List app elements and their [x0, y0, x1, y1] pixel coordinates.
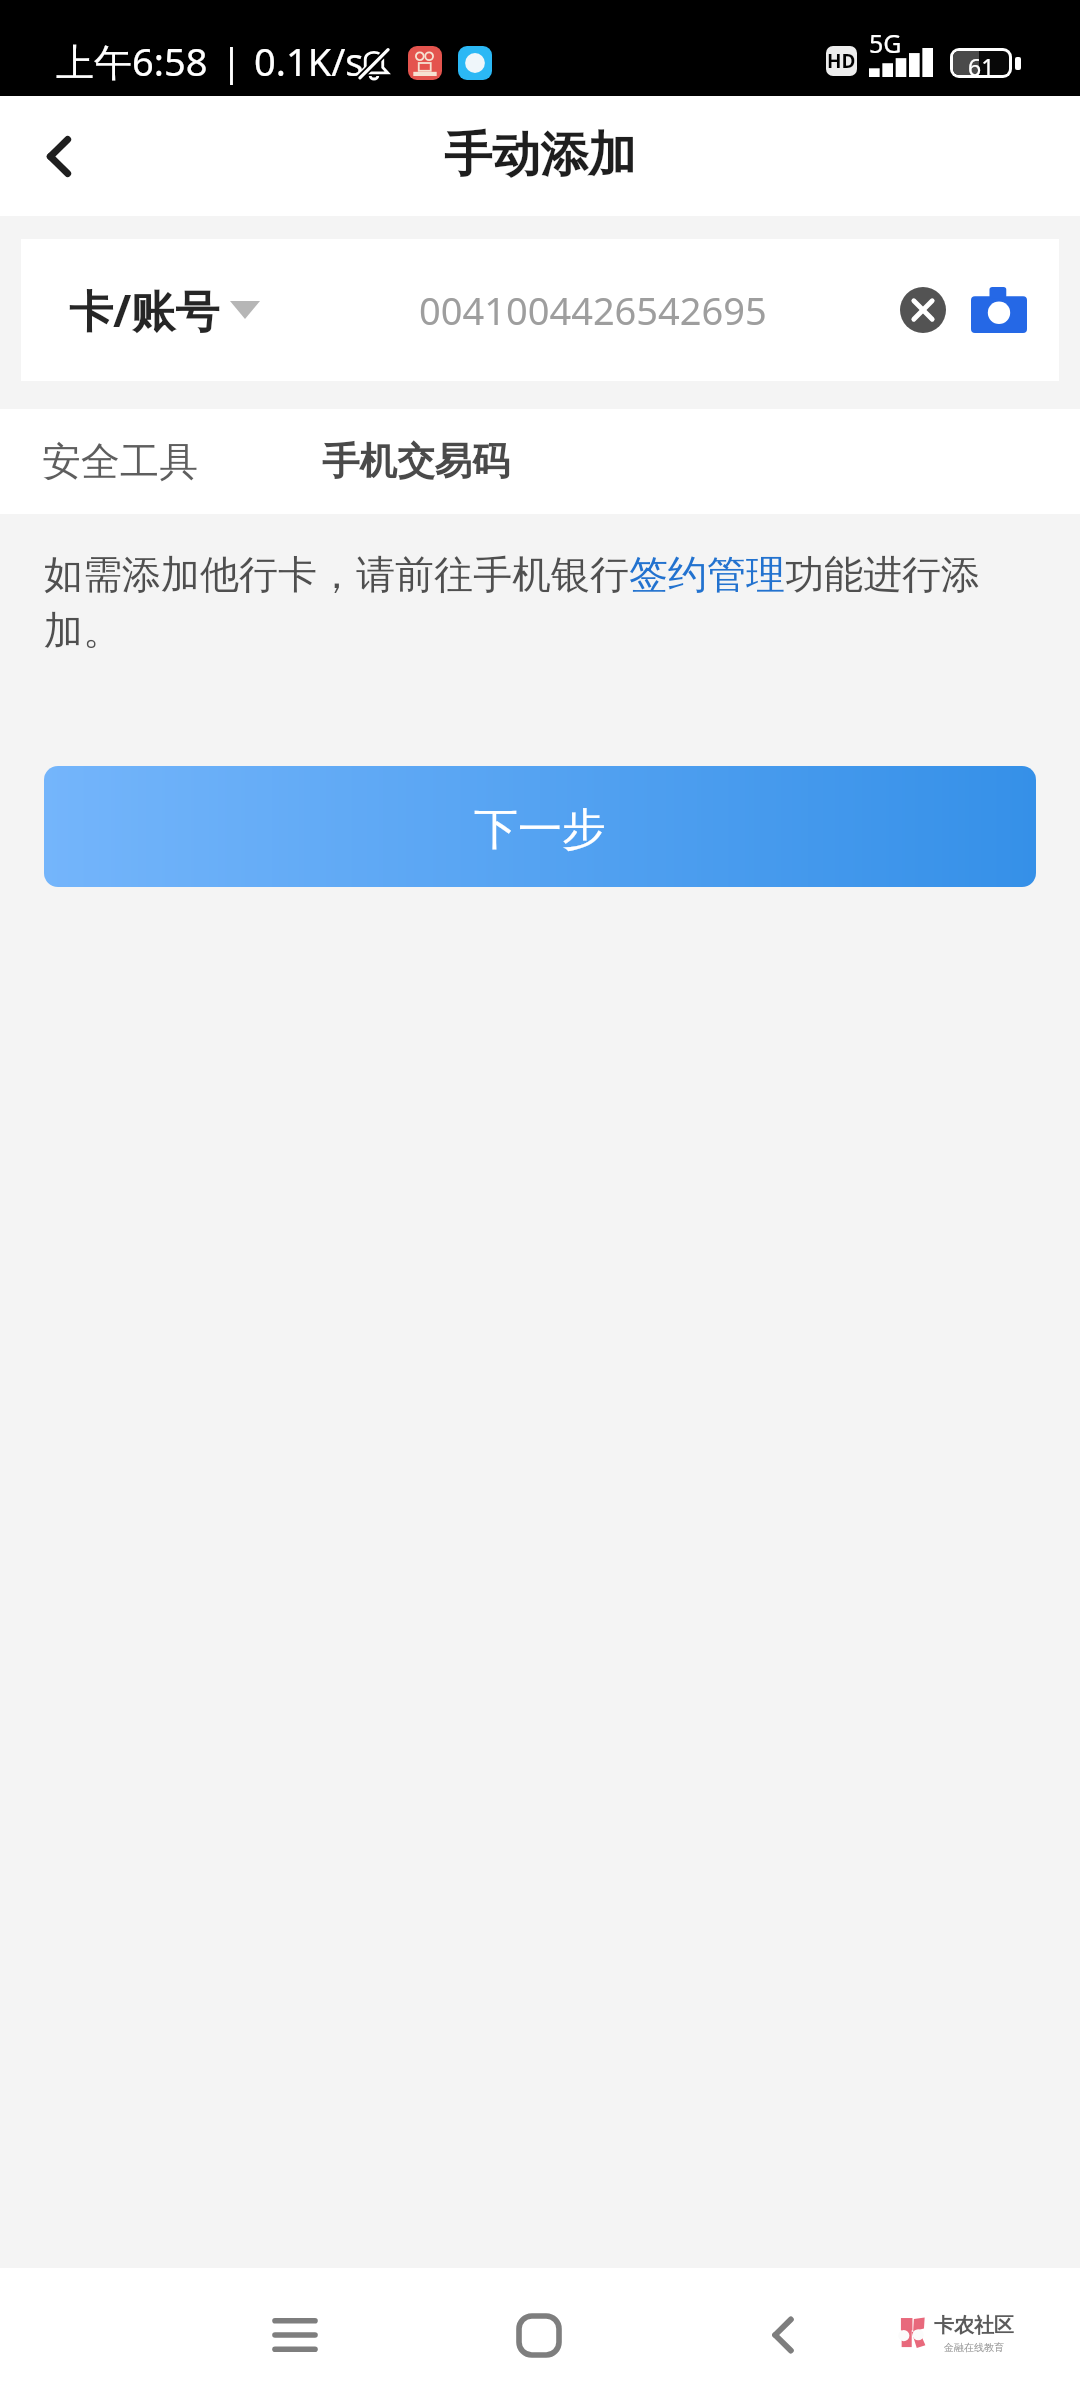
staticText: 下一步: [474, 802, 606, 857]
staticText: 手机交易码: [322, 438, 510, 485]
staticText: 上午6:58: [56, 35, 208, 87]
staticText: 0.1K/s: [254, 35, 364, 87]
staticText: 手动添加: [444, 125, 636, 185]
staticText: 如需添加他行卡，请前往手机银行签约管理功能进行添加。: [44, 550, 1052, 655]
button[interactable]: Back: [728, 2280, 838, 2390]
button[interactable]: Scan card: [964, 275, 1034, 345]
staticText: 安全工具: [42, 437, 198, 486]
button[interactable]: Recent apps: [240, 2280, 350, 2390]
button[interactable]: Clear: [888, 275, 958, 345]
staticText: |: [221, 35, 242, 87]
button[interactable]: 安全工具: [0, 409, 1080, 514]
staticText: 5G: [869, 26, 902, 60]
button[interactable]: Home: [484, 2280, 594, 2390]
staticText: 61: [968, 51, 995, 75]
button[interactable]: Back: [0, 96, 118, 216]
staticText: 0041004426542695: [419, 284, 767, 336]
staticText: HD: [827, 48, 856, 74]
staticText: 卡/账号: [69, 280, 220, 340]
staticText: 金融在线教育: [944, 2341, 1004, 2354]
button[interactable]: 下一步: [44, 766, 1036, 887]
button[interactable]: 卡/账号: [69, 280, 260, 340]
staticText: 卡农社区: [934, 2313, 1014, 2338]
